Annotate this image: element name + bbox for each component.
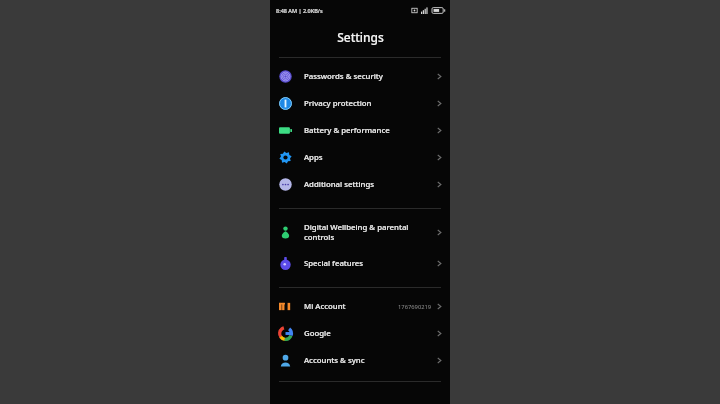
staticText: Mi Account xyxy=(304,301,398,312)
button[interactable]: Passwords & security xyxy=(270,63,450,90)
staticText: Additional settings xyxy=(304,179,437,190)
button[interactable]: Battery & performance xyxy=(270,117,450,144)
staticText: 8:48 AM | 2.0KB/s xyxy=(276,7,323,14)
button[interactable]: Accounts & sync xyxy=(270,347,450,374)
staticText: Digital Wellbeing & parental controls xyxy=(304,222,437,242)
button[interactable]: Special features xyxy=(270,250,450,277)
staticText: Settings xyxy=(337,29,384,45)
staticText: Google xyxy=(304,328,437,339)
button[interactable]: Additional settings xyxy=(270,171,450,198)
staticText: Accounts & sync xyxy=(304,355,437,366)
staticText: Battery & performance xyxy=(304,125,437,136)
button[interactable]: Privacy protection xyxy=(270,90,450,117)
staticText: 1767690219 xyxy=(398,303,432,311)
staticText: Privacy protection xyxy=(304,98,437,109)
button[interactable]: Google xyxy=(270,320,450,347)
staticText: Special features xyxy=(304,258,437,269)
button[interactable]: Mi Account xyxy=(270,293,450,320)
button[interactable]: Apps xyxy=(270,144,450,171)
button[interactable]: Digital Wellbeing & parental controls xyxy=(270,214,450,250)
staticText: Passwords & security xyxy=(304,71,437,82)
staticText: Apps xyxy=(304,152,437,163)
